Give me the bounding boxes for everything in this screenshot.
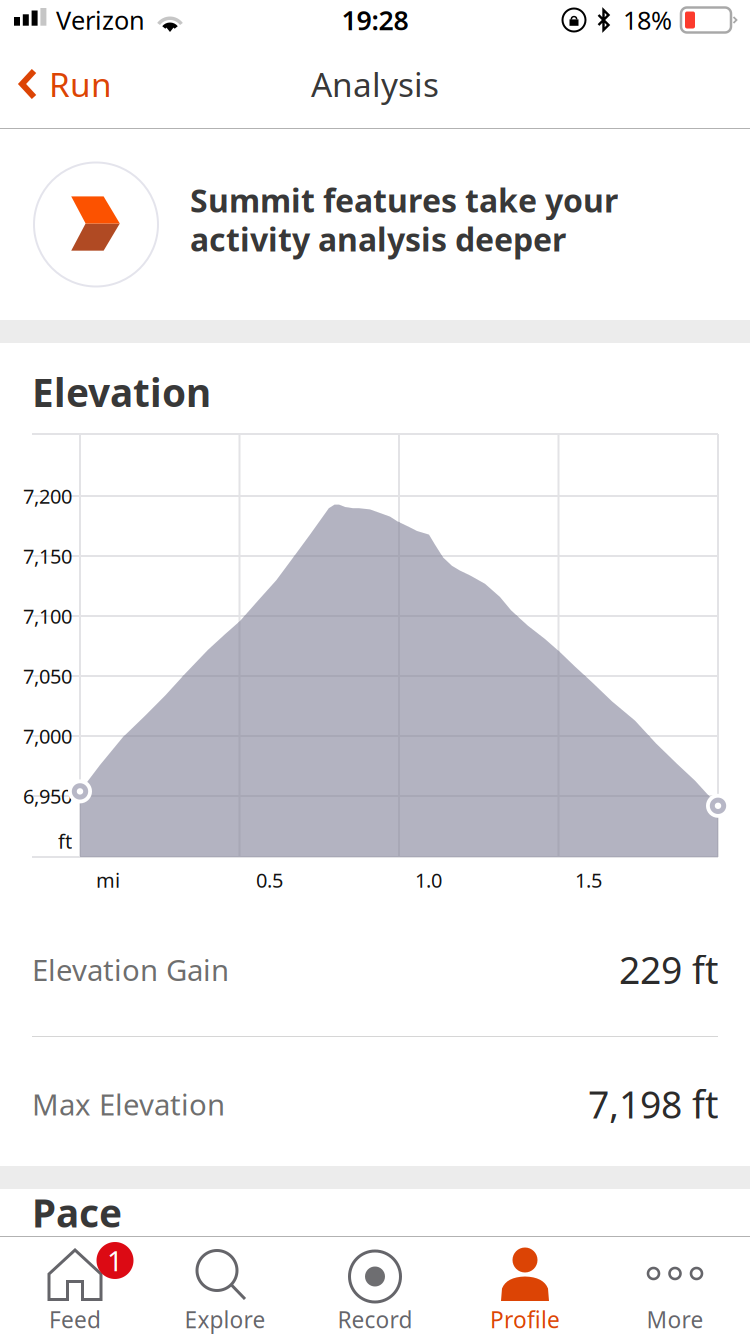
staticText: 18% (623, 3, 672, 37)
staticText: Max Elevation (32, 1084, 225, 1123)
staticText: 7,100 (23, 603, 72, 629)
staticText: 7,050 (23, 663, 72, 689)
staticText: mi (96, 867, 120, 893)
staticText: 7,000 (23, 723, 72, 749)
button[interactable]: Summit features take your (0, 129, 750, 320)
staticText: 7,198 ft (588, 1079, 718, 1129)
staticText: Record (337, 1304, 412, 1334)
staticText: Elevation (32, 366, 211, 418)
staticText: More (646, 1304, 703, 1334)
staticText: 6,950 (23, 783, 72, 809)
button[interactable]: More (600, 1236, 750, 1334)
staticText: Summit features take your (190, 179, 618, 221)
staticText: ft (58, 828, 72, 854)
button[interactable]: Record (300, 1236, 450, 1334)
staticText: 19:28 (341, 2, 408, 38)
staticText: Profile (490, 1304, 560, 1334)
staticText: 1 (107, 1242, 123, 1279)
staticText: Pace (32, 1187, 122, 1238)
staticText: Verizon (56, 3, 145, 37)
staticText: activity analysis deeper (190, 218, 566, 260)
staticText: 1.0 (415, 867, 442, 893)
staticText: 7,150 (23, 543, 72, 569)
staticText: Run (49, 62, 112, 106)
button[interactable]: Profile (450, 1236, 600, 1334)
staticText: Feed (49, 1304, 101, 1334)
button[interactable]: Run (0, 52, 126, 116)
staticText: 7,200 (23, 483, 72, 509)
staticText: 1.5 (575, 867, 602, 893)
staticText: Elevation Gain (32, 950, 229, 989)
button[interactable]: Explore (150, 1236, 300, 1334)
staticText: Analysis (311, 62, 439, 106)
button[interactable]: 1 (0, 1236, 150, 1334)
staticText: 0.5 (256, 867, 283, 893)
staticText: Explore (184, 1304, 265, 1334)
staticText: 229 ft (619, 945, 718, 994)
